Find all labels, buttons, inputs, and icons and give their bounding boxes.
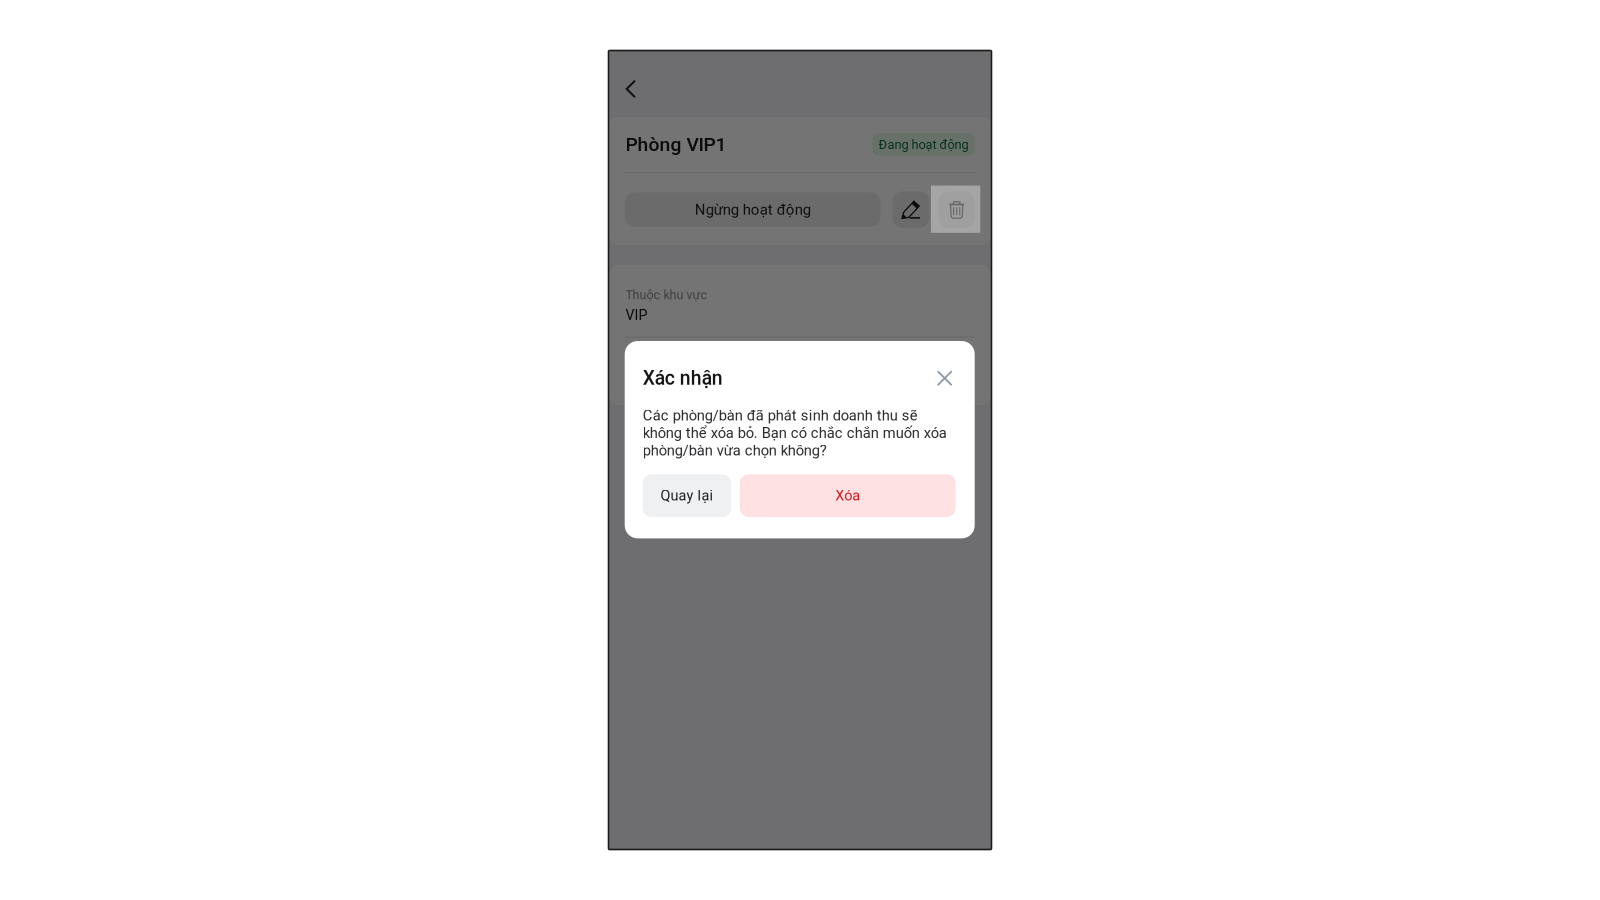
staticText: Thuộc khu vực	[625, 288, 707, 302]
staticText: Các phòng/bàn đã phát sinh doanh thu sẽ …	[643, 407, 947, 459]
staticText: Ngừng hoạt động	[695, 201, 811, 218]
staticText: Quay lại	[660, 487, 713, 504]
staticText: Đang hoạt động	[878, 137, 968, 152]
button[interactable]: Close	[934, 367, 956, 389]
staticText: Phòng VIP1	[625, 133, 726, 156]
button[interactable]: Back	[614, 67, 648, 101]
staticText: VIP	[625, 307, 647, 323]
button[interactable]: Quay lại	[643, 474, 731, 517]
button[interactable]: Xóa	[740, 474, 956, 517]
staticText: Xác nhận	[643, 367, 723, 390]
button[interactable]: Edit	[892, 191, 929, 228]
button[interactable]: Delete	[939, 191, 975, 228]
staticText: Xóa	[835, 487, 860, 504]
button[interactable]: Ngừng hoạt động	[625, 192, 880, 227]
